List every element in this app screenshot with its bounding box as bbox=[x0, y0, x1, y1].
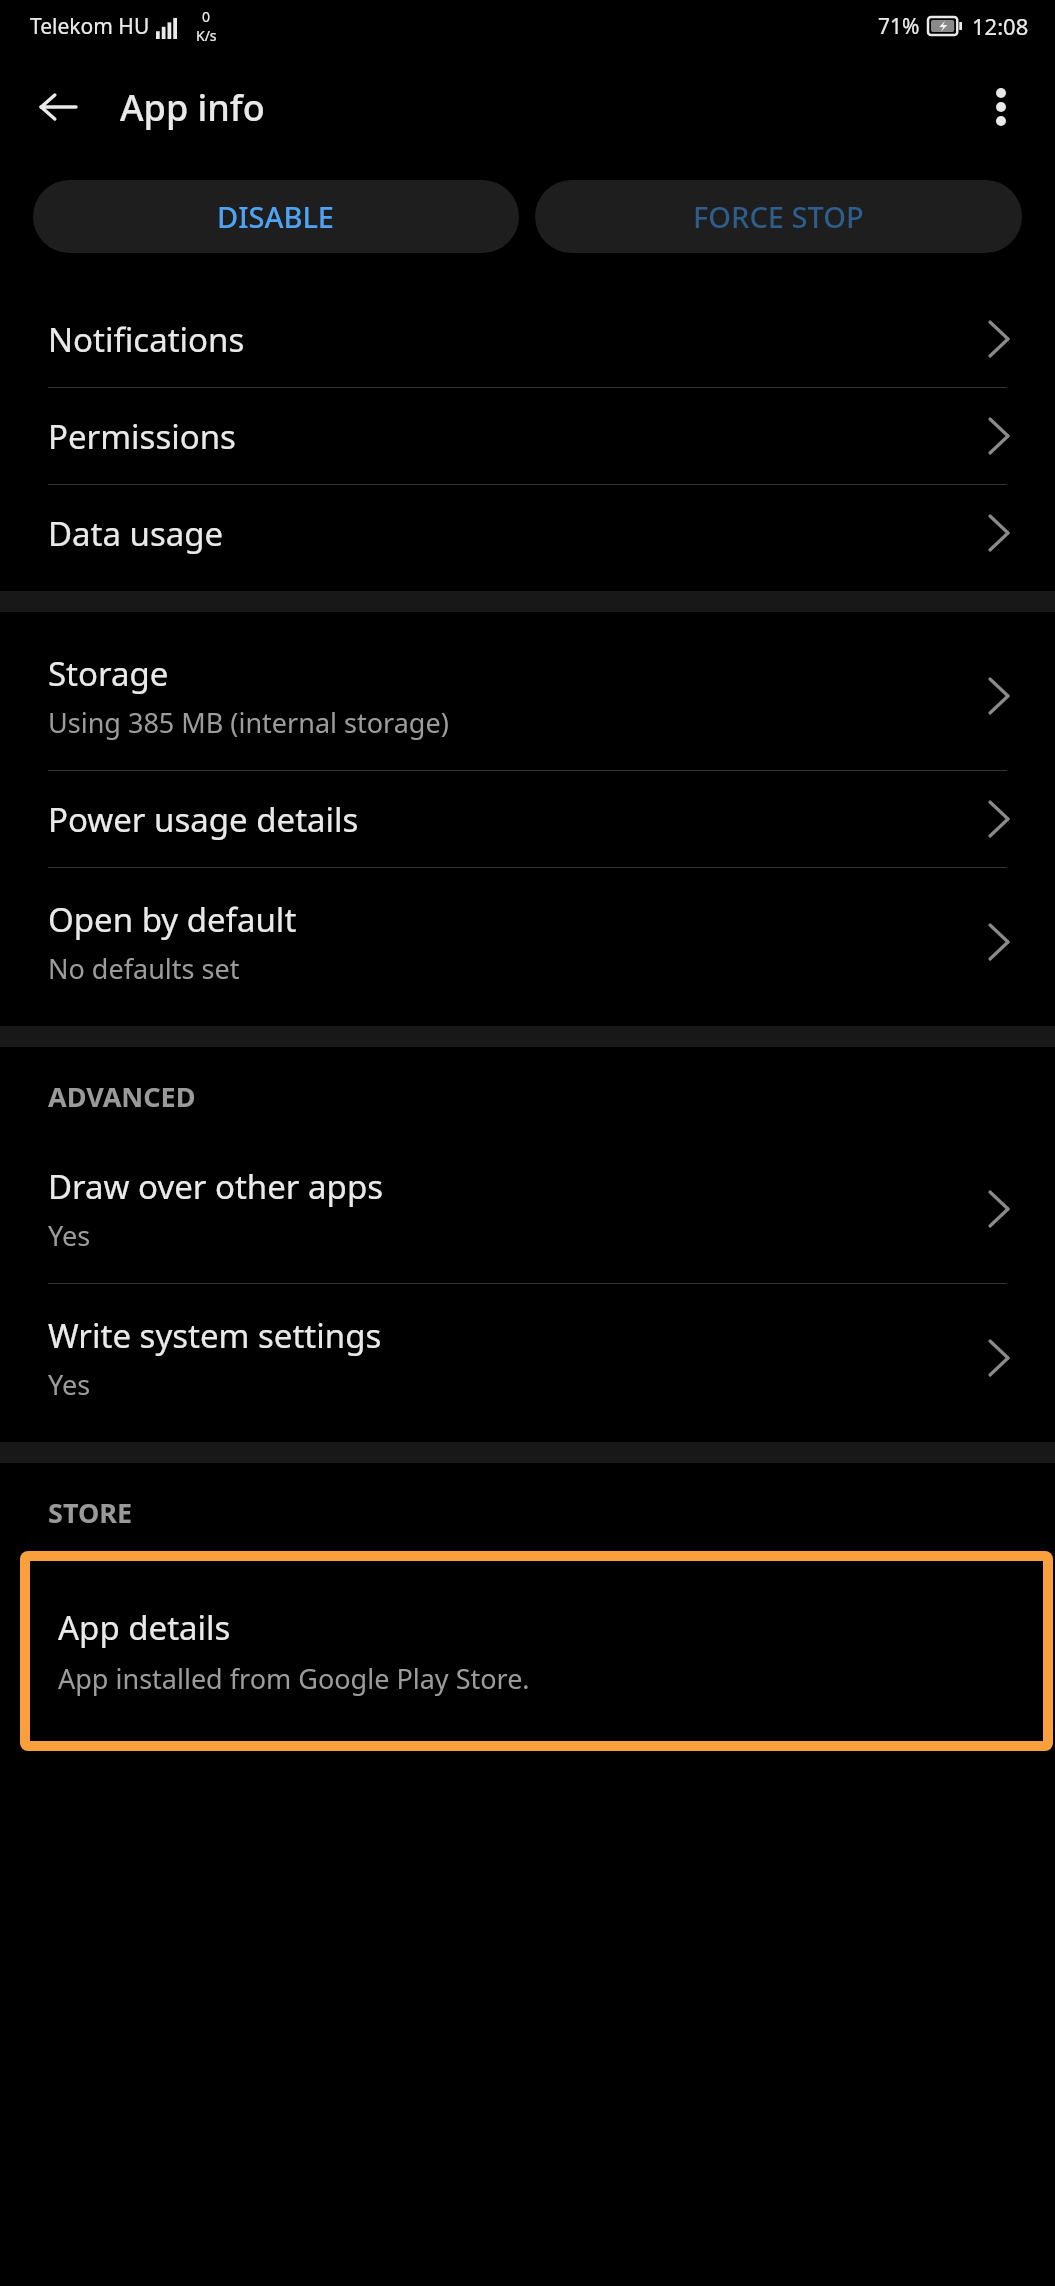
staticText: App info bbox=[120, 83, 265, 132]
staticText: Yes bbox=[48, 1217, 91, 1254]
staticText: Storage bbox=[48, 651, 169, 696]
button[interactable]: Open by default bbox=[0, 868, 1055, 1016]
button[interactable]: DISABLE bbox=[33, 180, 519, 253]
staticText: 0 bbox=[202, 7, 211, 26]
staticText: Telekom HU bbox=[30, 12, 150, 41]
button[interactable]: Write system settings bbox=[0, 1284, 1055, 1432]
staticText: 71% bbox=[878, 12, 920, 41]
staticText: K/s bbox=[196, 26, 217, 45]
button[interactable]: Back bbox=[22, 71, 94, 143]
button[interactable]: Storage bbox=[0, 622, 1055, 770]
staticText: Draw over other apps bbox=[48, 1164, 383, 1209]
staticText: Power usage details bbox=[48, 797, 359, 842]
staticText: App installed from Google Play Store. bbox=[58, 1660, 530, 1697]
staticText: DISABLE bbox=[217, 197, 335, 236]
staticText: 12:08 bbox=[972, 11, 1029, 41]
staticText: FORCE STOP bbox=[693, 197, 864, 236]
staticText: App details bbox=[58, 1605, 231, 1650]
button[interactable]: App details bbox=[30, 1561, 1043, 1741]
button[interactable]: More options bbox=[965, 71, 1037, 143]
staticText: Notifications bbox=[48, 317, 245, 362]
button[interactable]: Permissions bbox=[0, 388, 1055, 484]
button[interactable]: Draw over other apps bbox=[0, 1135, 1055, 1283]
staticText: Data usage bbox=[48, 511, 224, 556]
staticText: ADVANCED bbox=[48, 1078, 196, 1115]
staticText: No defaults set bbox=[48, 950, 240, 987]
button[interactable]: Notifications bbox=[0, 291, 1055, 387]
staticText: Using 385 MB (internal storage) bbox=[48, 704, 449, 741]
button[interactable]: Data usage bbox=[0, 485, 1055, 581]
staticText: STORE bbox=[48, 1494, 133, 1531]
staticText: Open by default bbox=[48, 897, 297, 942]
staticText: Write system settings bbox=[48, 1313, 382, 1358]
button[interactable]: Power usage details bbox=[0, 771, 1055, 867]
staticText: Permissions bbox=[48, 414, 236, 459]
staticText: Yes bbox=[48, 1366, 91, 1403]
button[interactable]: FORCE STOP bbox=[535, 180, 1022, 253]
